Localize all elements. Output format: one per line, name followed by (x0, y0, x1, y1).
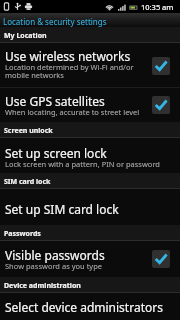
button[interactable]: Use GPS satellites (0, 88, 180, 122)
staticText: Use GPS satellites (5, 95, 105, 109)
staticText: Set up screen lock (5, 147, 107, 161)
staticText: Location & security settings (3, 16, 107, 27)
button[interactable]: Use wireless networks (0, 43, 180, 88)
staticText: My Location (4, 31, 47, 41)
button[interactable]: Toggle setting (152, 250, 170, 268)
button[interactable]: Toggle setting (152, 96, 170, 114)
button[interactable]: Select device administrators (0, 293, 180, 320)
button[interactable]: Visible passwords (0, 241, 180, 277)
staticText: Device administration (4, 281, 81, 291)
staticText: Use wireless networks (5, 50, 131, 64)
staticText: Passwords (4, 229, 41, 239)
staticText: Screen unlock (4, 126, 53, 136)
button[interactable]: Location & security settings (0, 13, 180, 27)
staticText: When locating, accurate to street level (5, 109, 140, 117)
staticText: 10:35 am (141, 2, 174, 12)
staticText: Visible passwords (5, 249, 105, 263)
staticText: Lock screen with a pattern, PIN or passw… (5, 161, 160, 169)
staticText: SIM card lock (4, 177, 51, 187)
button[interactable]: Set up screen lock (0, 138, 180, 173)
staticText: Show password as you type (5, 263, 103, 271)
staticText: Set up SIM card lock (5, 203, 119, 217)
staticText: Select device administrators (5, 301, 163, 315)
button[interactable]: Set up SIM card lock (0, 189, 180, 225)
staticText: Location determined by Wi-Fi and/or mobi… (5, 64, 134, 80)
button[interactable]: Toggle setting (152, 57, 170, 75)
